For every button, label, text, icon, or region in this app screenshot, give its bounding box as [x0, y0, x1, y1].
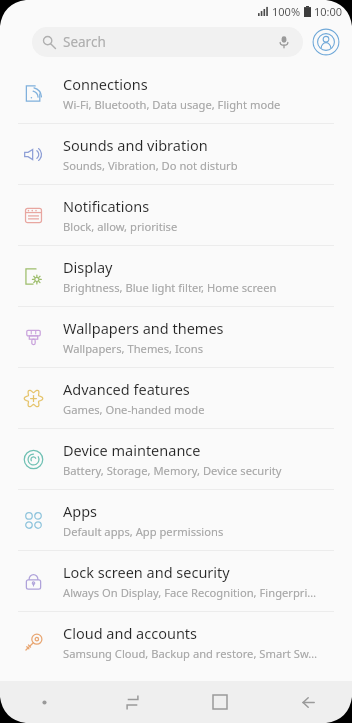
button[interactable]: Lock screen and security [0, 551, 352, 611]
staticText: Device maintenance [63, 440, 201, 460]
staticText: Notifications [63, 196, 150, 216]
button[interactable]: Sounds and vibration [0, 124, 352, 184]
staticText: Display [63, 257, 113, 277]
button[interactable]: Menu [0, 681, 88, 723]
staticText: Sounds and vibration [63, 135, 208, 155]
staticText: Brightness, Blue light filter, Home scre… [63, 280, 277, 295]
staticText: Cloud and accounts [63, 623, 198, 643]
staticText: Games, One-handed mode [63, 402, 205, 417]
button[interactable]: Back [264, 681, 352, 723]
button[interactable]: Notifications [0, 185, 352, 245]
staticText: Always On Display, Face Recognition, Fin… [63, 585, 317, 600]
button[interactable]: Recents [88, 681, 176, 723]
staticText: Block, allow, prioritise [63, 219, 178, 234]
button[interactable]: Display [0, 246, 352, 306]
button[interactable]: Search [32, 27, 303, 57]
button[interactable]: Account [312, 28, 340, 56]
staticText: 100% [272, 4, 301, 19]
button[interactable]: Connections [0, 62, 352, 123]
staticText: Default apps, App permissions [63, 524, 224, 539]
button[interactable]: Home [176, 681, 264, 723]
staticText: Connections [63, 74, 148, 94]
staticText: Search [63, 33, 106, 51]
button[interactable]: Device maintenance [0, 429, 352, 489]
staticText: Lock screen and security [63, 562, 230, 582]
staticText: 10:00 [314, 4, 343, 19]
button[interactable]: Cloud and accounts [0, 612, 352, 672]
button[interactable]: Advanced features [0, 368, 352, 428]
staticText: Battery, Storage, Memory, Device securit… [63, 463, 282, 478]
staticText: Wallpapers and themes [63, 318, 224, 338]
button[interactable]: Wallpapers and themes [0, 307, 352, 367]
staticText: Sounds, Vibration, Do not disturb [63, 158, 238, 173]
button[interactable]: Voice search [276, 34, 292, 50]
staticText: Wi-Fi, Bluetooth, Data usage, Flight mod… [63, 97, 281, 112]
staticText: Wallpapers, Themes, Icons [63, 341, 204, 356]
button[interactable]: Apps [0, 490, 352, 550]
staticText: Apps [63, 501, 98, 521]
staticText: Advanced features [63, 379, 190, 399]
staticText: Samsung Cloud, Backup and restore, Smart… [63, 646, 318, 661]
